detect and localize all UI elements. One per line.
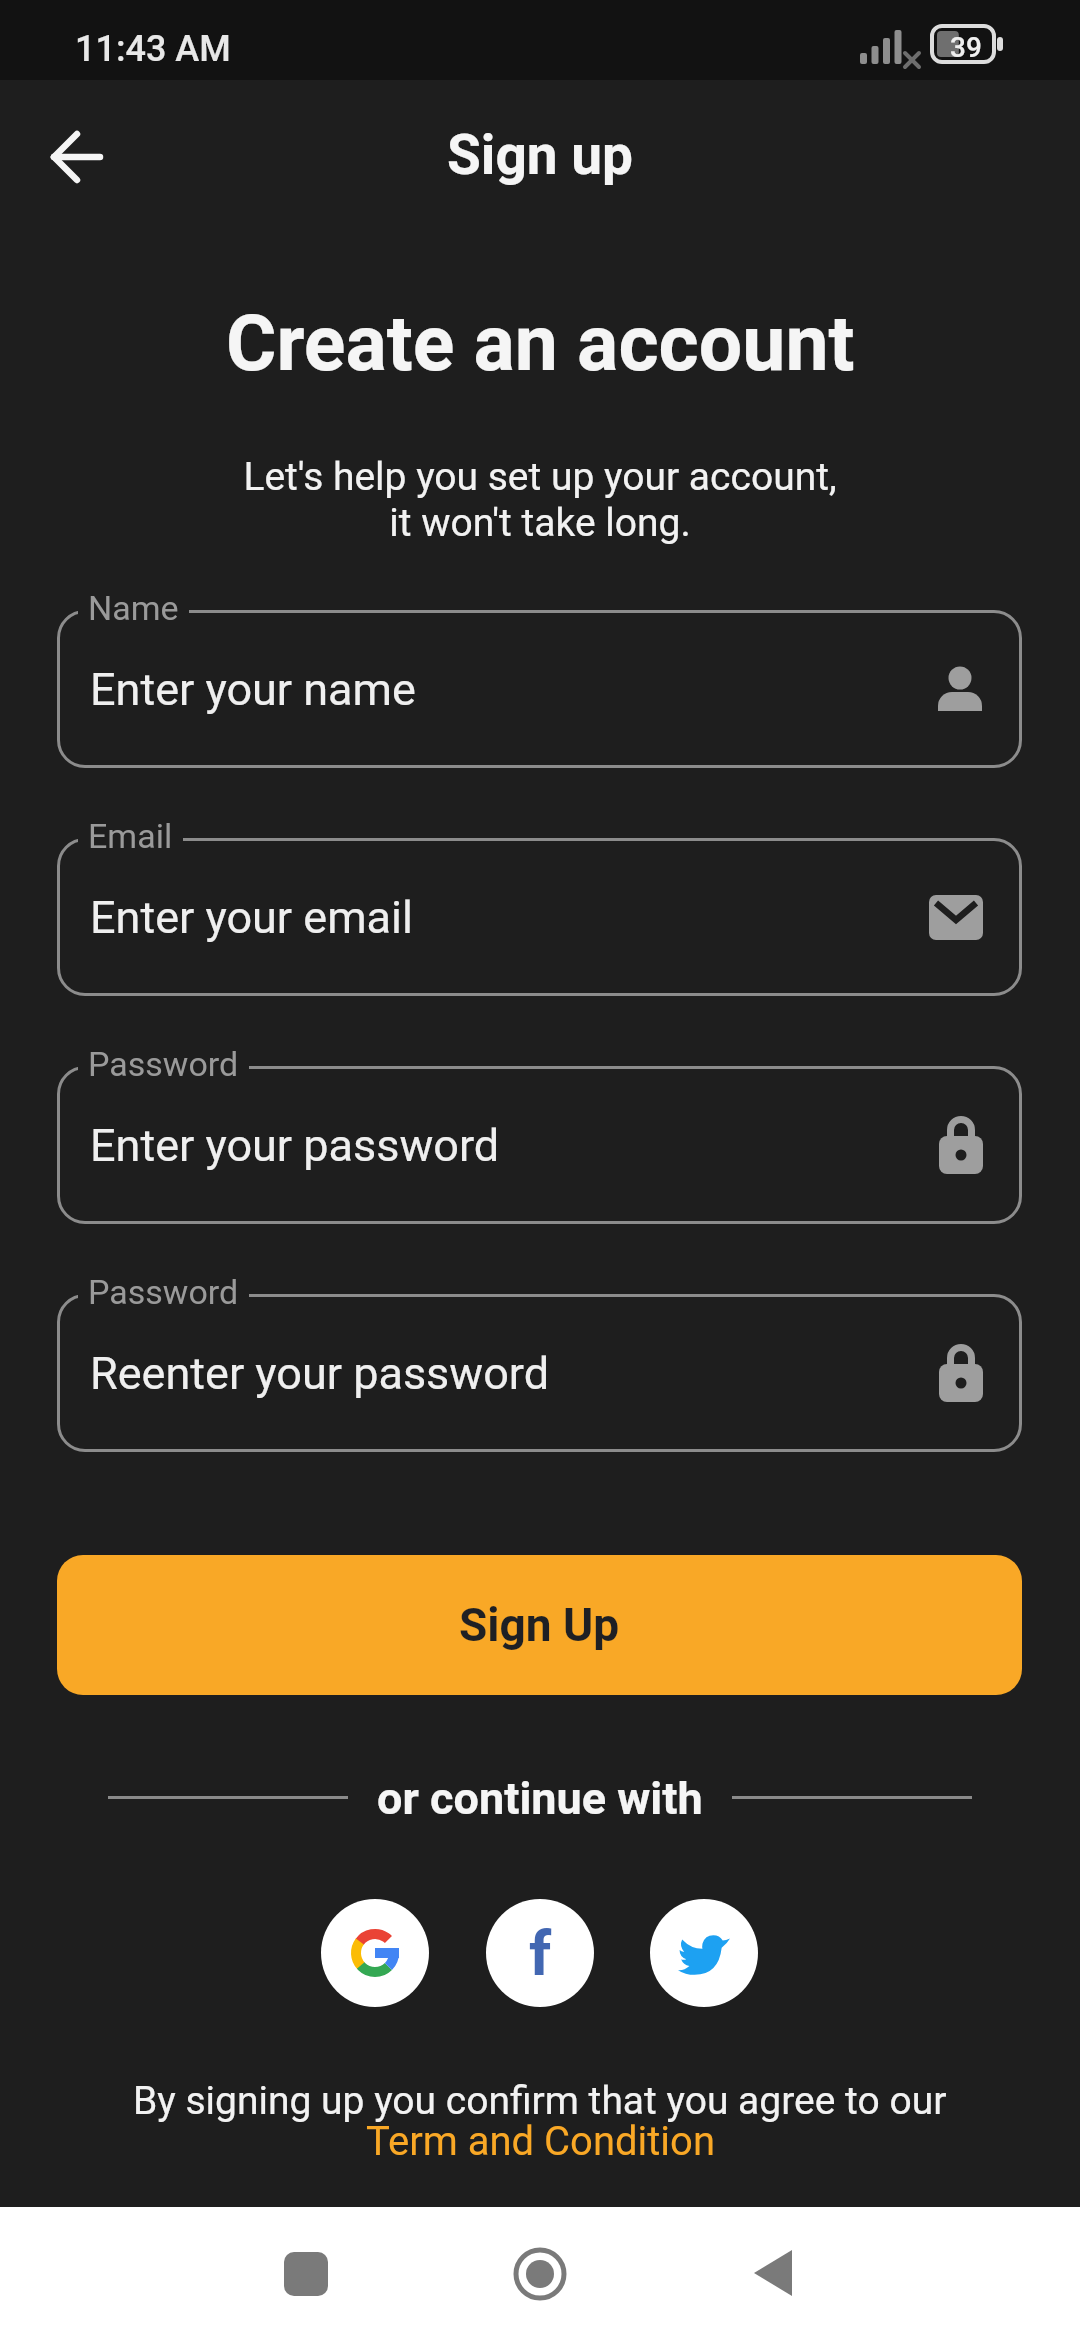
button[interactable]: Enter your password: [57, 1066, 1022, 1224]
button[interactable]: Reenter your password: [57, 1294, 1022, 1452]
staticText: Let's help you set up your account, it w…: [243, 454, 837, 545]
button[interactable]: Enter your name: [57, 610, 1022, 768]
button[interactable]: Enter your email: [57, 838, 1022, 996]
staticText: Enter your name: [90, 663, 416, 716]
staticText: Term and Condition: [366, 2118, 715, 2165]
button[interactable]: [650, 1899, 758, 2007]
staticText: By signing up you confirm that you agree…: [133, 2078, 947, 2124]
button[interactable]: Sign Up: [57, 1555, 1022, 1695]
button[interactable]: [513, 2247, 567, 2301]
button[interactable]: [283, 2251, 329, 2297]
staticText: Email: [88, 816, 173, 856]
staticText: Sign up: [447, 123, 634, 187]
staticText: Password: [88, 1272, 239, 1312]
staticText: Enter your password: [90, 1119, 500, 1172]
button[interactable]: Term and Condition: [366, 2118, 715, 2165]
staticText: Sign Up: [459, 1598, 620, 1652]
staticText: or continue with: [377, 1772, 703, 1825]
staticText: Create an account: [226, 299, 855, 389]
staticText: Enter your email: [90, 891, 413, 944]
button[interactable]: f: [486, 1899, 594, 2007]
staticText: Reenter your password: [90, 1347, 550, 1400]
staticText: Name: [88, 588, 179, 628]
staticText: Password: [88, 1044, 239, 1084]
staticText: 11:43 AM: [75, 28, 231, 70]
button[interactable]: [321, 1899, 429, 2007]
staticText: 39: [950, 31, 982, 64]
staticText: f: [529, 1917, 552, 1990]
button[interactable]: [750, 2249, 798, 2297]
button[interactable]: [35, 115, 119, 199]
